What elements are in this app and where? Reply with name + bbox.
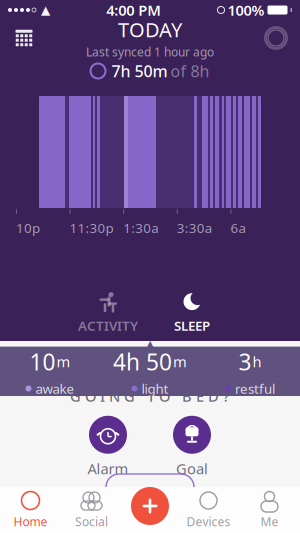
staticText: 7:30AM [83, 483, 133, 503]
staticText: 3:30a [177, 219, 212, 237]
button[interactable]: SLEEP [150, 291, 234, 335]
staticText: G O I N G T O B E D ? [70, 386, 230, 406]
staticText: Me [260, 513, 278, 529]
staticText: ▲ [143, 336, 156, 356]
staticText: Goal [176, 459, 208, 478]
staticText: 100% [227, 0, 264, 20]
staticText: 4:00 PM [106, 0, 161, 20]
button[interactable]: ACTIVITY [66, 291, 150, 335]
staticText: awake [35, 380, 74, 397]
staticText: ACTIVITY [78, 317, 138, 334]
button[interactable]: Sync [258, 21, 294, 55]
staticText: 10p [16, 219, 40, 237]
staticText: Alarm [87, 459, 128, 478]
button[interactable]: Devices [178, 487, 239, 533]
staticText: restful [235, 380, 275, 397]
button[interactable]: Add [127, 483, 173, 529]
button[interactable]: Me [239, 487, 300, 533]
staticText: ▲ [41, 3, 50, 17]
staticText: Last synced 1 hour ago [86, 44, 214, 60]
staticText: TODAY [118, 16, 182, 43]
staticText: Devices [186, 513, 230, 529]
button[interactable]: Social [61, 487, 122, 533]
staticText: 10 [29, 347, 55, 377]
staticText: SLEEP [174, 317, 210, 334]
button[interactable]: Goal [161, 416, 223, 503]
button[interactable]: Calendar [6, 21, 42, 55]
button[interactable]: Home [0, 487, 61, 533]
staticText: m [56, 352, 70, 371]
staticText: light [141, 380, 168, 397]
staticText: 7h 50m [111, 60, 167, 82]
staticText: 3 [238, 347, 251, 377]
button[interactable]: Alarm [77, 416, 139, 503]
staticText: h [252, 352, 261, 371]
staticText: of 8h [170, 60, 209, 82]
staticText: 8h [183, 483, 200, 503]
staticText: 4h 50 [113, 347, 172, 377]
staticText: 1:30a [123, 219, 158, 237]
staticText: Home [13, 513, 47, 529]
staticText: 6a [230, 219, 245, 237]
staticText: Social [75, 513, 108, 529]
staticText: 11:30p [70, 219, 114, 237]
staticText: m [173, 352, 187, 371]
